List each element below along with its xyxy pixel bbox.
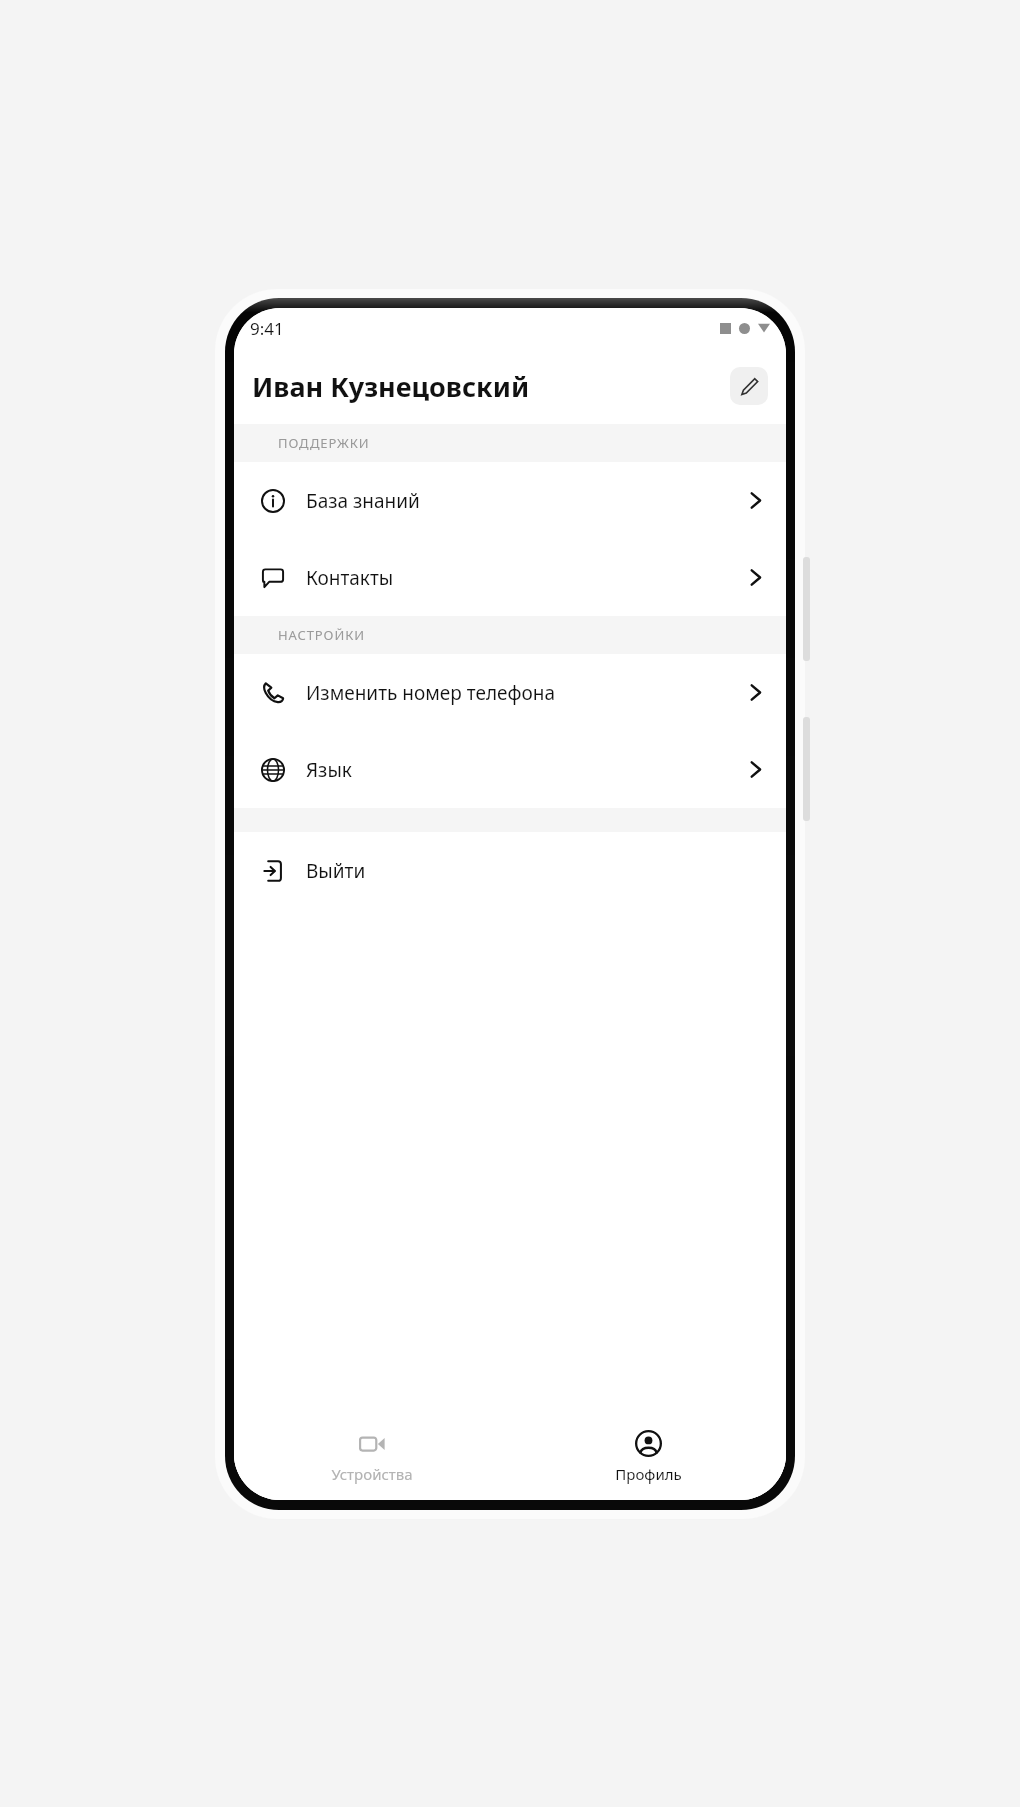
staticText: Язык	[306, 757, 745, 783]
button[interactable]: Профиль	[510, 1414, 786, 1500]
staticText: База знаний	[306, 488, 745, 514]
button[interactable]: Контакты	[234, 539, 786, 616]
staticText: НАСТРОЙКИ	[278, 626, 365, 644]
button[interactable]: База знаний	[234, 462, 786, 539]
staticText: 9:41	[250, 317, 284, 340]
button[interactable]: Изменить номер телефона	[234, 654, 786, 731]
staticText: ПОДДЕРЖКИ	[278, 434, 370, 452]
button[interactable]: Выйти	[234, 832, 786, 909]
staticText: Изменить номер телефона	[306, 680, 745, 706]
staticText: Контакты	[306, 565, 745, 591]
staticText: Выйти	[306, 858, 766, 884]
button[interactable]: Устройства	[234, 1414, 510, 1500]
button[interactable]: Редактировать профиль	[730, 367, 768, 405]
staticText: Иван Кузнецовский	[252, 368, 730, 405]
staticText: Устройства	[331, 1464, 413, 1484]
button[interactable]: Язык	[234, 731, 786, 808]
staticText: Профиль	[615, 1464, 682, 1484]
